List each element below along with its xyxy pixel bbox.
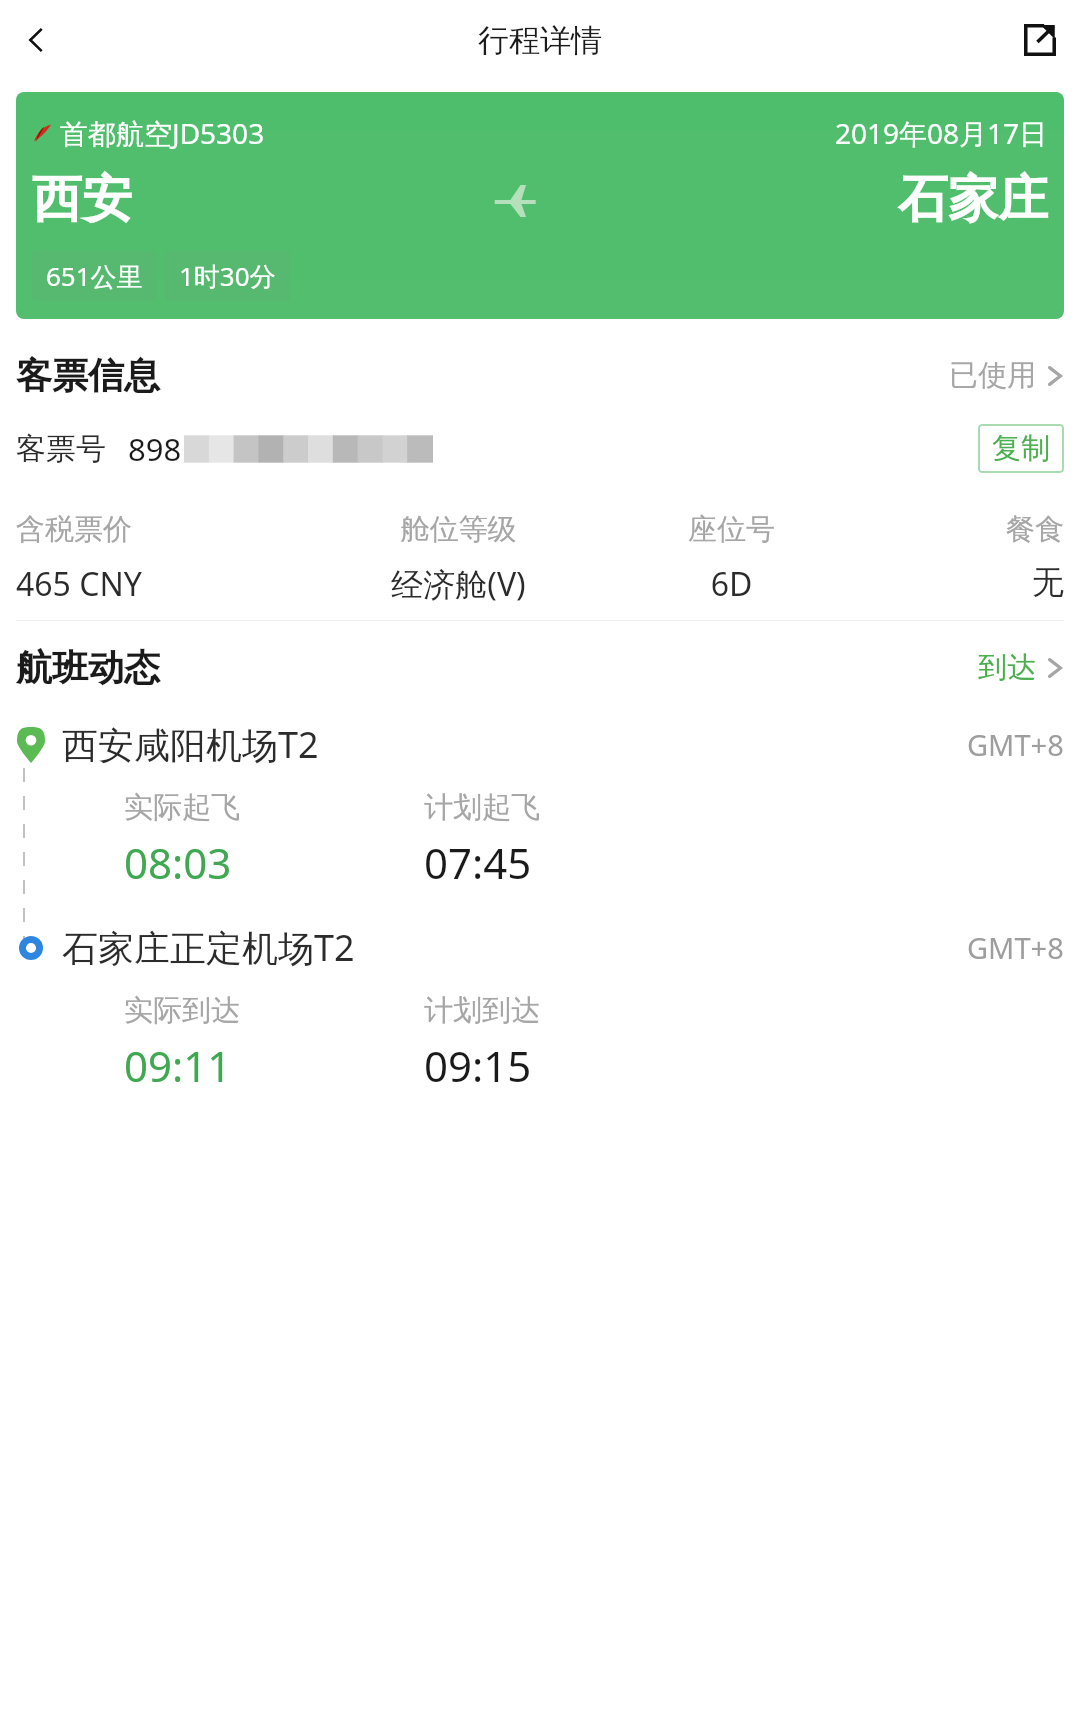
staticText: 无 xyxy=(857,562,1064,602)
staticText: 已使用 xyxy=(949,357,1036,394)
staticText: 石家庄正定机场T2 xyxy=(62,923,355,972)
button[interactable]: Back xyxy=(8,12,64,68)
button[interactable]: 石家庄正定机场T2 xyxy=(0,923,1080,1094)
button[interactable]: 航班动态 xyxy=(16,645,1064,690)
staticText: 09:15 xyxy=(424,1037,532,1094)
staticText: 餐食 xyxy=(857,511,1064,548)
staticText: 含税票价 xyxy=(16,511,311,548)
staticText: 07:45 xyxy=(424,834,532,891)
staticText: 计划起飞 xyxy=(424,789,540,826)
staticText: 465 CNY xyxy=(16,562,311,606)
staticText: 2019年08月17日 xyxy=(835,114,1048,152)
button[interactable]: 首都航空JD5303 xyxy=(16,92,1064,319)
staticText: 座位号 xyxy=(606,511,857,548)
staticText: GMT+8 xyxy=(967,725,1064,764)
button[interactable]: 客票信息 xyxy=(16,353,1064,398)
staticText: 行程详情 xyxy=(478,21,602,60)
staticText: 经济舱(V) xyxy=(311,562,606,606)
staticText: 实际起飞 xyxy=(124,789,240,826)
staticText: GMT+8 xyxy=(967,928,1064,967)
staticText: 898 xyxy=(128,428,182,470)
staticText: 651公里 xyxy=(46,258,143,294)
staticText: 客票号 xyxy=(16,430,106,468)
staticText: 石家庄 xyxy=(898,168,1048,231)
staticText: 1时30分 xyxy=(179,258,276,294)
staticText: 首都航空JD5303 xyxy=(60,114,265,152)
staticText: 到达 xyxy=(978,649,1036,686)
staticText: 西安咸阳机场T2 xyxy=(62,720,319,769)
staticText: 08:03 xyxy=(124,834,232,891)
button[interactable]: Share xyxy=(1012,12,1068,68)
staticText: 客票信息 xyxy=(16,353,160,398)
staticText: 实际到达 xyxy=(124,992,240,1029)
staticText: 计划到达 xyxy=(424,992,540,1029)
staticText: 舱位等级 xyxy=(311,511,606,548)
staticText: 复制 xyxy=(992,430,1050,467)
staticText: 西安 xyxy=(32,168,132,231)
button[interactable]: 复制 xyxy=(978,424,1064,473)
staticText: 6D xyxy=(606,562,857,606)
staticText: 09:11 xyxy=(124,1037,232,1094)
staticText: 航班动态 xyxy=(16,645,160,690)
button[interactable]: 西安咸阳机场T2 xyxy=(0,720,1080,891)
